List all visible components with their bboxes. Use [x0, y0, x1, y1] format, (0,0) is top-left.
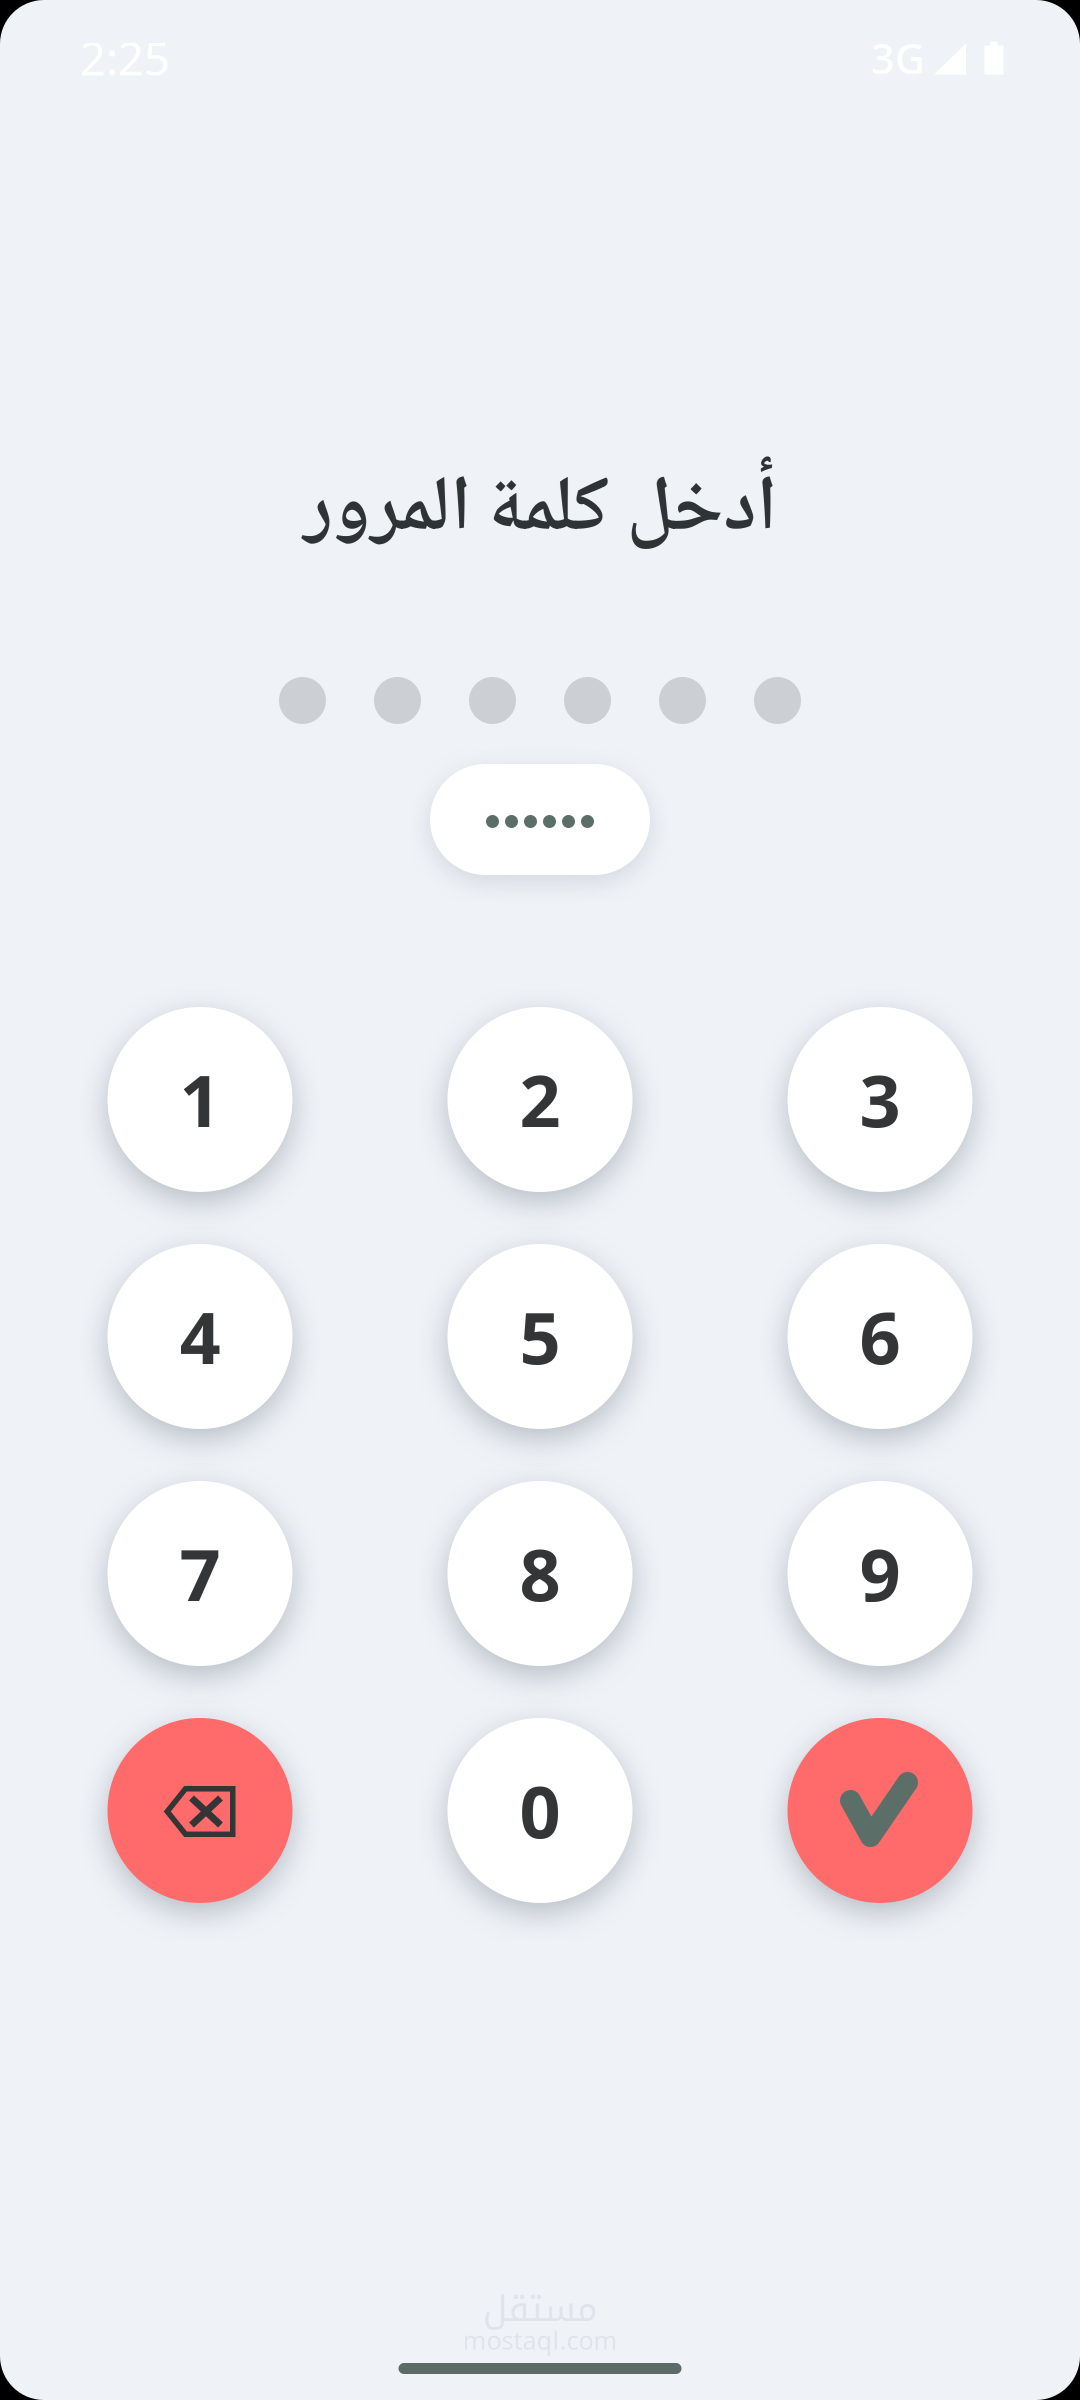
- staticText: أدخل كلمة المرور: [303, 446, 777, 578]
- staticText: 4: [179, 1289, 220, 1384]
- staticText: 2:25: [80, 28, 170, 88]
- staticText: 5: [519, 1289, 560, 1384]
- staticText: 0: [519, 1763, 560, 1858]
- staticText: 3: [859, 1052, 900, 1147]
- button[interactable]: 1: [107, 1007, 292, 1192]
- button[interactable]: 8: [447, 1481, 632, 1666]
- staticText: 7: [179, 1526, 220, 1621]
- button[interactable]: 6: [787, 1244, 972, 1429]
- staticText: mostaql.com: [462, 2323, 617, 2357]
- staticText: مستقل: [482, 2275, 597, 2343]
- staticText: 3G: [871, 31, 925, 85]
- button[interactable]: 2: [447, 1007, 632, 1192]
- button[interactable]: 7: [107, 1481, 292, 1666]
- button[interactable]: 9: [787, 1481, 972, 1666]
- staticText: 8: [519, 1526, 560, 1621]
- button[interactable]: 3: [787, 1007, 972, 1192]
- staticText: 9: [859, 1526, 900, 1621]
- staticText: 2: [519, 1052, 560, 1147]
- button[interactable]: 5: [447, 1244, 632, 1429]
- staticText: 1: [179, 1052, 220, 1147]
- button[interactable]: Confirm: [787, 1718, 972, 1903]
- button[interactable]: 4: [107, 1244, 292, 1429]
- button[interactable]: Delete: [107, 1718, 292, 1903]
- staticText: 6: [859, 1289, 900, 1384]
- button[interactable]: 0: [447, 1718, 632, 1903]
